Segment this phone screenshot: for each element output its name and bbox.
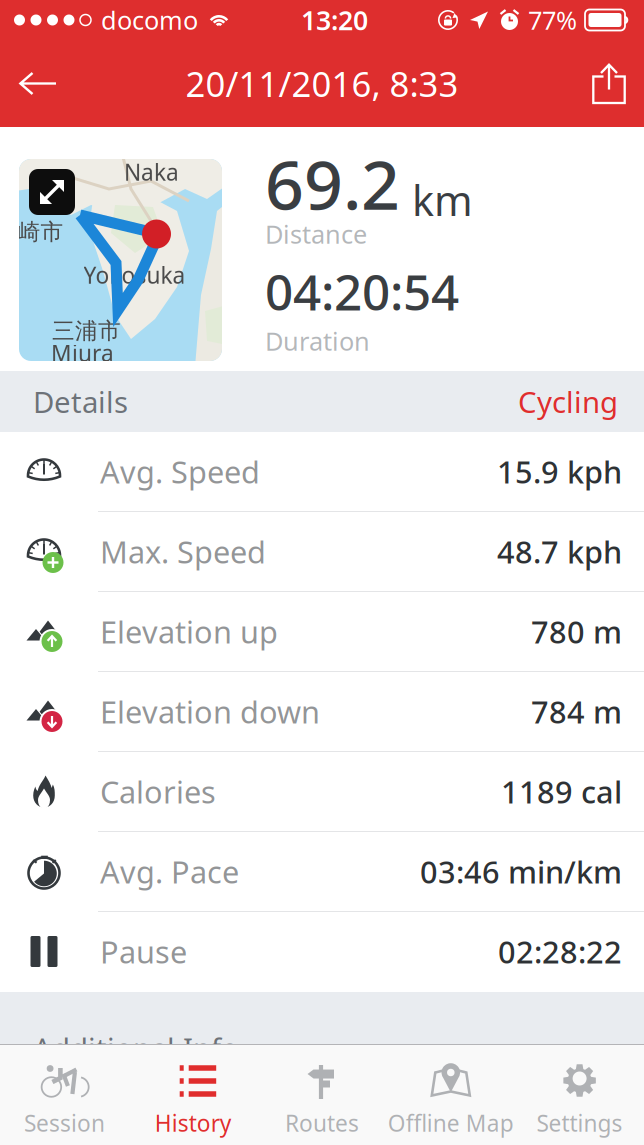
button[interactable]: Share (574, 40, 644, 127)
staticText: History (155, 1108, 232, 1138)
button[interactable]: Offline Map (386, 1045, 515, 1145)
button[interactable]: History (129, 1045, 258, 1145)
staticText: 崎市 (17, 218, 63, 246)
staticText: 02:28:22 (498, 931, 622, 972)
button[interactable]: Max. Speed (0, 512, 644, 592)
staticText: km (412, 173, 473, 227)
staticText: Additional Info (33, 1028, 239, 1067)
button[interactable]: Back (0, 40, 76, 127)
staticText: Offline Map (388, 1108, 514, 1138)
staticText: Avg. Pace (100, 851, 239, 892)
staticText: Pause (100, 931, 187, 972)
button[interactable]: Session (0, 1045, 129, 1145)
staticText: 48.7 kph (497, 531, 622, 572)
staticText: Cycling (518, 382, 618, 421)
staticText: Miura (51, 338, 114, 368)
staticText: Routes (285, 1108, 359, 1138)
button[interactable]: Calories (0, 752, 644, 832)
staticText: 15.9 kph (497, 451, 622, 492)
staticText: Avg. Speed (100, 451, 260, 492)
staticText: 03:46 min/km (420, 851, 622, 892)
staticText: 三浦市 (52, 317, 121, 345)
staticText: Details (33, 382, 128, 421)
staticText: Elevation up (100, 611, 278, 652)
button[interactable]: Avg. Pace (0, 832, 644, 912)
staticText: 784 m (531, 691, 622, 732)
button[interactable]: Avg. Speed (0, 432, 644, 512)
staticText: 13:20 (301, 2, 368, 38)
staticText: 780 m (531, 611, 622, 652)
staticText: 20/11/2016, 8:33 (185, 60, 458, 106)
staticText: Naka (124, 157, 179, 187)
button[interactable]: Expand map (29, 169, 75, 215)
staticText: 77% (528, 3, 577, 37)
staticText: 1189 cal (501, 771, 622, 812)
button[interactable]: Settings (515, 1045, 644, 1145)
staticText: Calories (100, 771, 216, 812)
staticText: Distance (265, 217, 367, 251)
staticText: Settings (537, 1108, 623, 1138)
button[interactable]: Elevation up (0, 592, 644, 672)
button[interactable]: Routes (258, 1045, 386, 1145)
staticText: Max. Speed (100, 531, 266, 572)
staticText: 69.2 (265, 138, 400, 228)
staticText: docomo (101, 3, 198, 37)
staticText: Session (24, 1108, 105, 1138)
button[interactable]: Pause (0, 912, 644, 992)
button[interactable]: Elevation down (0, 672, 644, 752)
staticText: Yokosuka (83, 260, 185, 290)
staticText: 04:20:54 (265, 258, 459, 324)
staticText: Elevation down (100, 691, 320, 732)
staticText: Duration (265, 324, 370, 358)
button[interactable]: Cycling (518, 382, 644, 421)
